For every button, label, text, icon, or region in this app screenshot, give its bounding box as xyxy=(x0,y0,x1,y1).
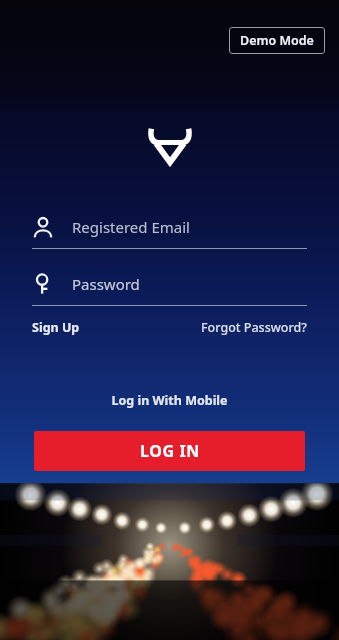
button[interactable]: Password xyxy=(32,269,307,306)
button[interactable]: Sign Up xyxy=(32,319,80,336)
button[interactable]: LOG IN xyxy=(34,431,305,471)
staticText: Log in With Mobile xyxy=(111,392,228,409)
staticText: Demo Mode xyxy=(240,32,314,49)
other: Registered Email xyxy=(32,216,54,238)
button[interactable]: Demo Mode xyxy=(229,27,325,54)
staticText: LOG IN xyxy=(140,440,200,462)
staticText: Password xyxy=(72,274,140,294)
staticText: Sign Up xyxy=(32,319,80,336)
other: Password xyxy=(32,273,54,295)
staticText: Registered Email xyxy=(72,217,190,237)
staticText: Forgot Password? xyxy=(201,319,307,336)
button[interactable]: Forgot Password? xyxy=(201,319,307,336)
button[interactable]: Log in With Mobile xyxy=(0,392,339,409)
button[interactable]: Registered Email xyxy=(32,212,307,249)
